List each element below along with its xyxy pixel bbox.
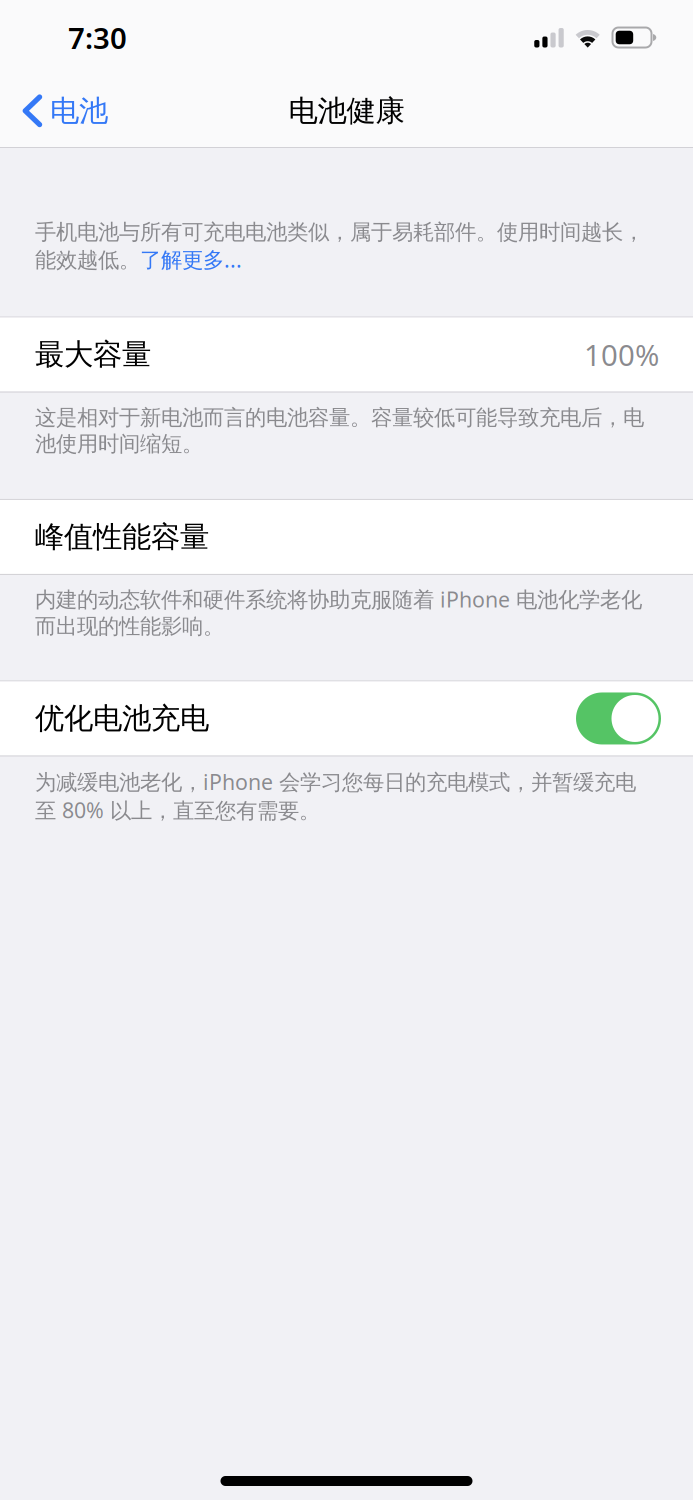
button[interactable]: 电池 <box>0 75 120 147</box>
staticText: 优化电池充电 <box>35 700 209 736</box>
staticText: 峰值性能容量 <box>35 519 209 555</box>
staticText: 电池 <box>50 93 108 129</box>
staticText: 电池健康 <box>288 93 404 129</box>
staticText: 内建的动态软件和硬件系统将协助克服随着 iPhone 电池化学老化而出现的性能影… <box>35 585 642 639</box>
staticText: 7:30 <box>68 18 127 57</box>
staticText: 这是相对于新电池而言的电池容量。容量较低可能导致充电后，电池使用时间缩短。 <box>35 404 644 457</box>
button[interactable]: 优化电池充电 <box>0 681 693 755</box>
staticText: 手机电池与所有可充电电池类似，属于易耗部件。使用时间越长，能效越低。了解更多..… <box>35 219 644 273</box>
staticText: 为减缓电池老化，iPhone 会学习您每日的充电模式，并暂缓充电至 80% 以上… <box>35 767 636 824</box>
staticText: 100% <box>584 335 659 374</box>
staticText: 最大容量 <box>35 336 151 372</box>
